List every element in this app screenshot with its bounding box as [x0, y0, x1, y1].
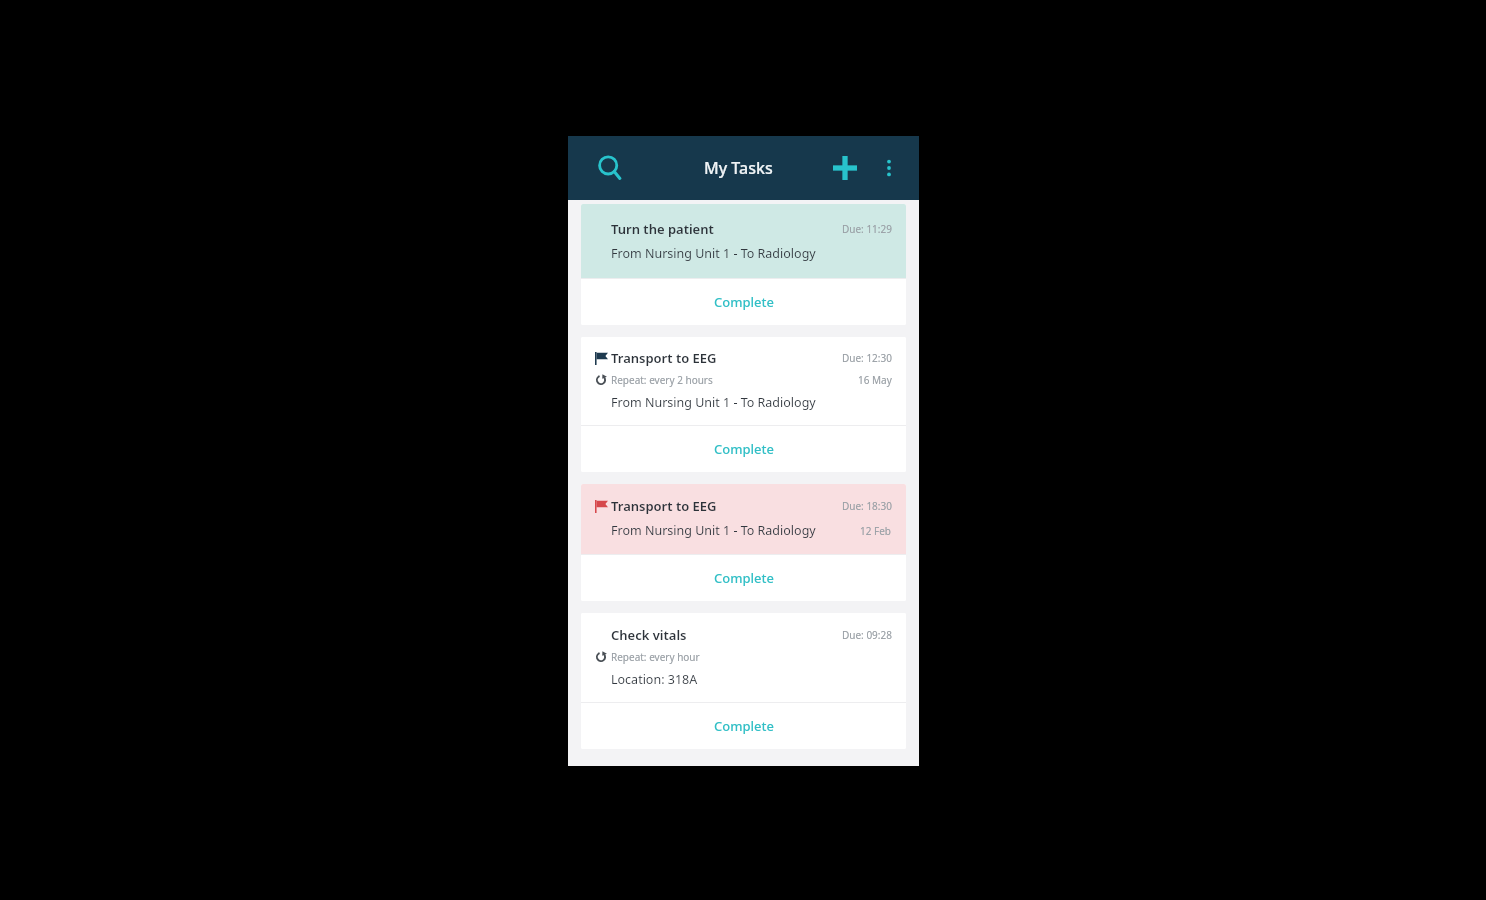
staticText: 12 Feb — [860, 524, 892, 538]
button[interactable]: Turn the patient — [581, 204, 906, 325]
staticText: 16 May — [858, 373, 892, 387]
button[interactable]: Complete — [581, 279, 906, 325]
button[interactable]: More options — [867, 146, 911, 190]
staticText: From Nursing Unit 1 - To Radiology — [611, 245, 816, 262]
button[interactable]: Complete — [581, 703, 906, 749]
button[interactable]: Transport to EEG — [581, 337, 906, 472]
staticText: Due: 12:30 — [842, 351, 892, 365]
staticText: Due: 11:29 — [842, 222, 892, 236]
staticText: Repeat: every 2 hours — [611, 373, 713, 387]
staticText: Turn the patient — [611, 220, 714, 238]
staticText: My Tasks — [704, 157, 773, 179]
button[interactable]: Complete — [581, 555, 906, 601]
staticText: Repeat: every hour — [611, 650, 700, 664]
staticText: Location: 318A — [611, 671, 698, 688]
staticText: Complete — [714, 440, 774, 458]
button[interactable]: Transport to EEG — [581, 484, 906, 601]
staticText: Complete — [714, 717, 774, 735]
button[interactable]: Check vitals — [581, 613, 906, 749]
staticText: Due: 09:28 — [842, 628, 892, 642]
staticText: Due: 18:30 — [842, 499, 892, 513]
staticText: Transport to EEG — [611, 497, 717, 515]
staticText: From Nursing Unit 1 - To Radiology — [611, 394, 816, 411]
staticText: From Nursing Unit 1 - To Radiology — [611, 522, 816, 539]
staticText: Check vitals — [611, 626, 687, 644]
button[interactable]: Add task — [823, 146, 867, 190]
button[interactable]: Search — [590, 148, 630, 188]
staticText: Complete — [714, 569, 774, 587]
staticText: Transport to EEG — [611, 349, 717, 367]
staticText: Complete — [714, 293, 774, 311]
button[interactable]: Complete — [581, 426, 906, 472]
